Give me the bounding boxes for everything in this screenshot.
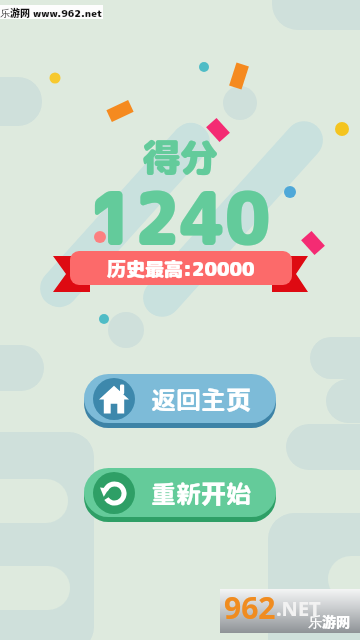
staticText: 返回主页 [151,380,252,417]
button[interactable]: Restart [84,468,276,517]
staticText: 得分 [142,130,219,183]
staticText: 乐游网 www.962.net [0,5,103,19]
other: Restart [100,479,129,508]
staticText: 乐游网 [308,611,350,631]
other: Home [99,384,129,414]
staticText: 1240 [89,165,271,268]
staticText: 重新开始 [151,474,252,511]
staticText: 962 [224,587,276,628]
staticText: 历史最高:20000 [107,254,255,282]
staticText: .NET [276,595,321,622]
button[interactable]: Home [84,374,276,423]
